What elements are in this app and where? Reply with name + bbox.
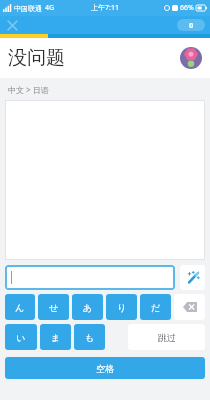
staticText: だ [151,302,161,313]
staticText: 没问题 [8,46,65,70]
button[interactable]: Close [4,17,20,33]
staticText: ま [51,332,61,343]
button[interactable]: 空格 [5,357,205,379]
staticText: せ [49,302,59,313]
button[interactable]: ん [5,294,35,320]
button[interactable]: 0 [177,19,205,31]
staticText: 上午7:11 [91,3,119,13]
staticText: い [16,332,26,343]
staticText: 中文 > 日语 [8,84,49,95]
button[interactable]: 跳过 [128,324,205,350]
button[interactable]: も [74,324,105,350]
staticText: 空格 [96,363,114,374]
button[interactable]: せ [38,294,69,320]
button[interactable]: り [106,294,137,320]
staticText: 中国联通 [14,4,42,13]
button[interactable]: Profile avatar [180,47,202,69]
staticText: あ [83,302,93,313]
button[interactable]: い [5,324,37,350]
button[interactable] [5,100,205,260]
button[interactable]: Backspace [174,294,205,320]
staticText: も [85,332,95,343]
button[interactable]: あ [72,294,103,320]
button[interactable]: ま [40,324,71,350]
button[interactable]: だ [140,294,171,320]
staticText: 4G [45,3,55,13]
staticText: 0 [189,20,194,30]
staticText: 66% [180,3,194,13]
staticText: り [117,302,127,313]
button[interactable] [5,265,175,290]
staticText: 跳过 [158,332,176,343]
button[interactable]: Hint [180,265,205,290]
staticText: ん [15,302,25,313]
